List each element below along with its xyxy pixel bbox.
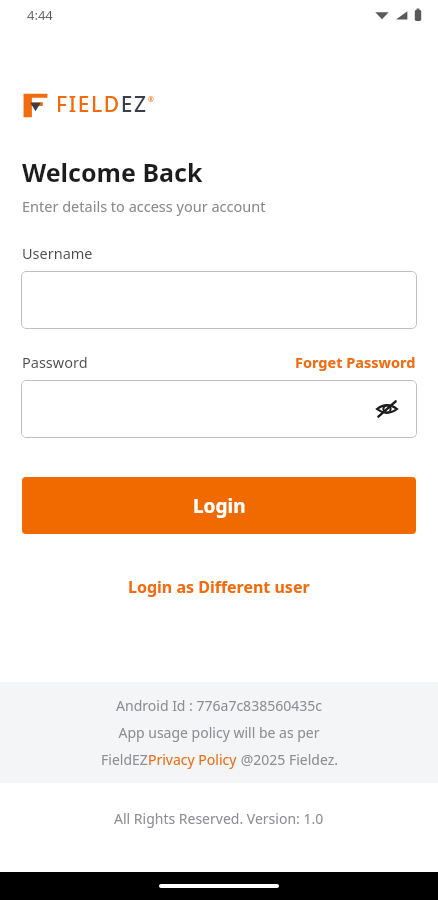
staticText: App usage policy will be as per	[118, 723, 320, 742]
staticText: All Rights Reserved. Version: 1.0	[114, 809, 324, 828]
staticText: Enter details to access your account	[22, 196, 266, 216]
button[interactable]	[21, 271, 417, 329]
staticText: FieldEZ	[101, 750, 148, 769]
button[interactable]: Login as Different user	[120, 572, 318, 602]
button[interactable]: Privacy Policy	[148, 750, 237, 769]
button[interactable]: Forget Password	[295, 352, 416, 372]
staticText: Login	[193, 493, 246, 519]
staticText: Username	[22, 243, 93, 263]
staticText: Password	[22, 352, 88, 372]
button[interactable]: Show password	[21, 380, 417, 438]
staticText: Welcome Back	[22, 155, 203, 189]
staticText: 4:44	[27, 6, 53, 24]
staticText: Android Id : 776a7c838560435c	[116, 696, 322, 715]
button[interactable]: Show password	[371, 393, 403, 425]
staticText: Privacy Policy	[148, 750, 237, 769]
staticText: Forget Password	[295, 352, 416, 372]
staticText: FIELDEZ	[56, 90, 148, 119]
staticText: ®	[148, 95, 154, 105]
staticText: @2025 Fieldez.	[237, 750, 338, 769]
button[interactable]: Login	[22, 477, 416, 534]
staticText: Login as Different user	[128, 576, 310, 598]
